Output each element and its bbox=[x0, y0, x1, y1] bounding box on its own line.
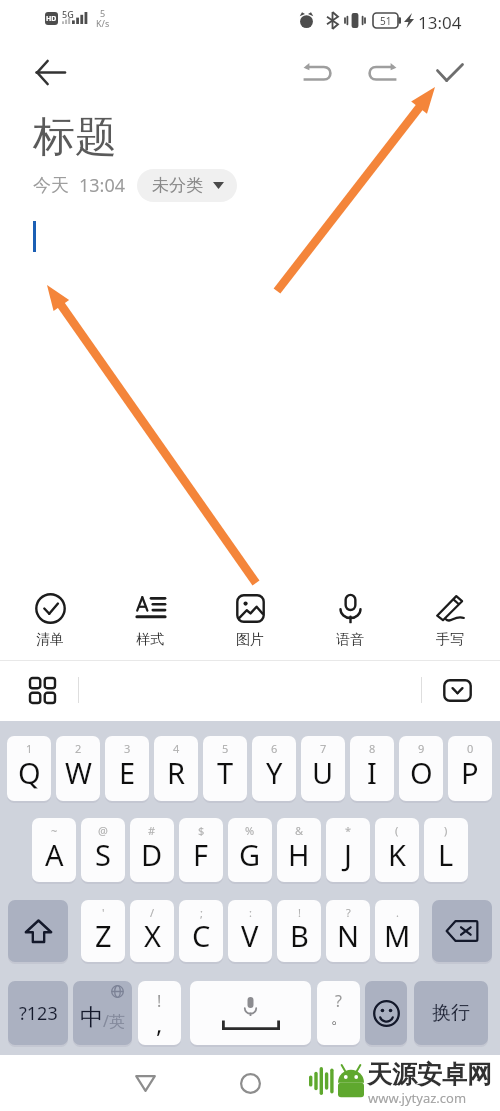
staticText: 未分类 bbox=[152, 175, 203, 196]
button[interactable]: 图片 bbox=[200, 586, 300, 652]
staticText: 5G bbox=[62, 8, 74, 20]
staticText: W bbox=[65, 753, 92, 792]
staticText: ?123 bbox=[19, 1001, 58, 1026]
staticText: 标题 bbox=[33, 111, 117, 164]
staticText: ! bbox=[298, 905, 301, 920]
button[interactable]: Save bbox=[426, 48, 474, 96]
staticText: A bbox=[45, 835, 64, 874]
staticText: S bbox=[95, 835, 111, 874]
button[interactable]: # bbox=[130, 818, 174, 882]
button[interactable]: 1 bbox=[7, 736, 51, 801]
button[interactable]: Home bbox=[227, 1060, 273, 1106]
staticText: : bbox=[249, 905, 252, 920]
button[interactable]: & bbox=[277, 818, 321, 882]
button[interactable]: $ bbox=[179, 818, 223, 882]
staticText: 样式 bbox=[136, 631, 164, 649]
button[interactable]: 清单 bbox=[0, 586, 100, 652]
button[interactable]: ? bbox=[317, 981, 360, 1045]
staticText: 换行 bbox=[432, 1001, 470, 1025]
button[interactable]: Back bbox=[26, 48, 74, 96]
button[interactable]: 7 bbox=[301, 736, 345, 801]
staticText: K bbox=[388, 835, 406, 874]
staticText: % bbox=[245, 823, 255, 838]
button[interactable]: 手写 bbox=[400, 586, 500, 652]
button[interactable]: : bbox=[228, 900, 272, 962]
button[interactable]: . bbox=[375, 900, 419, 962]
button[interactable]: ! bbox=[138, 981, 181, 1045]
staticText: H bbox=[288, 835, 310, 874]
button[interactable]: ; bbox=[179, 900, 223, 962]
staticText: 。 bbox=[331, 1008, 347, 1028]
button[interactable]: ?123 bbox=[8, 981, 68, 1045]
button[interactable]: % bbox=[228, 818, 272, 882]
button[interactable]: / bbox=[130, 900, 174, 962]
button[interactable]: @ bbox=[81, 818, 125, 882]
staticText: . bbox=[396, 905, 399, 920]
button[interactable]: Keyboard tools bbox=[18, 666, 66, 714]
button[interactable]: Undo bbox=[293, 48, 341, 96]
button[interactable]: Shift bbox=[8, 900, 68, 962]
button[interactable]: 4 bbox=[154, 736, 198, 801]
button[interactable]: 9 bbox=[399, 736, 443, 801]
button[interactable]: 未分类 bbox=[137, 169, 237, 202]
button[interactable]: ) bbox=[424, 818, 468, 882]
staticText: D bbox=[141, 835, 163, 874]
staticText: T bbox=[217, 753, 234, 792]
staticText: 天源安卓网 bbox=[367, 1059, 492, 1090]
button[interactable]: ( bbox=[375, 818, 419, 882]
staticText: # bbox=[148, 823, 156, 838]
staticText: Q bbox=[18, 753, 41, 792]
staticText: 5 bbox=[100, 7, 106, 19]
staticText: www.jytyaz.com bbox=[368, 1089, 467, 1107]
button[interactable]: 语音 bbox=[300, 586, 400, 652]
button[interactable]: Space bbox=[190, 981, 311, 1045]
button[interactable]: 6 bbox=[252, 736, 296, 801]
button[interactable]: ~ bbox=[32, 818, 76, 882]
button[interactable]: Switch language bbox=[73, 981, 132, 1045]
staticText: 6 bbox=[271, 741, 278, 756]
button[interactable]: 3 bbox=[105, 736, 149, 801]
staticText: F bbox=[193, 835, 209, 874]
staticText: ) bbox=[444, 823, 448, 838]
staticText: 0 bbox=[467, 741, 474, 756]
button[interactable]: Back bbox=[122, 1060, 168, 1106]
staticText: 13:04 bbox=[418, 11, 462, 34]
staticText: 7 bbox=[320, 741, 327, 756]
button[interactable]: 样式 bbox=[100, 586, 200, 652]
button[interactable]: Redo bbox=[358, 48, 406, 96]
staticText: I bbox=[367, 753, 377, 792]
staticText: $ bbox=[198, 823, 205, 838]
staticText: 4 bbox=[173, 741, 180, 756]
button[interactable]: ! bbox=[277, 900, 321, 962]
button[interactable]: ? bbox=[326, 900, 370, 962]
button[interactable]: ' bbox=[81, 900, 125, 962]
button[interactable]: Emoji bbox=[365, 981, 407, 1045]
staticText: 51 bbox=[380, 14, 392, 28]
button[interactable]: Backspace bbox=[432, 900, 492, 962]
button[interactable]: Hide keyboard bbox=[433, 666, 481, 714]
staticText: 清单 bbox=[36, 631, 64, 649]
staticText: 1 bbox=[26, 741, 33, 756]
button[interactable]: 8 bbox=[350, 736, 394, 801]
staticText: E bbox=[119, 753, 136, 792]
staticText: C bbox=[192, 916, 211, 955]
button[interactable]: 2 bbox=[56, 736, 100, 801]
staticText: 今天 bbox=[33, 174, 69, 197]
staticText: 2 bbox=[75, 741, 82, 756]
staticText: J bbox=[344, 835, 352, 874]
staticText: 图片 bbox=[236, 631, 264, 649]
staticText: /英 bbox=[103, 1010, 125, 1032]
staticText: V bbox=[241, 916, 259, 955]
button[interactable]: * bbox=[326, 818, 370, 882]
staticText: P bbox=[461, 753, 479, 792]
staticText: 3 bbox=[124, 741, 131, 756]
button[interactable]: 换行 bbox=[414, 981, 488, 1045]
staticText: K/s bbox=[96, 17, 110, 29]
staticText: 8 bbox=[369, 741, 376, 756]
button[interactable]: 0 bbox=[448, 736, 492, 801]
staticText: 手写 bbox=[436, 631, 464, 649]
staticText: G bbox=[239, 835, 261, 874]
button[interactable]: 5 bbox=[203, 736, 247, 801]
staticText: M bbox=[384, 916, 411, 955]
staticText: ~ bbox=[51, 823, 58, 838]
